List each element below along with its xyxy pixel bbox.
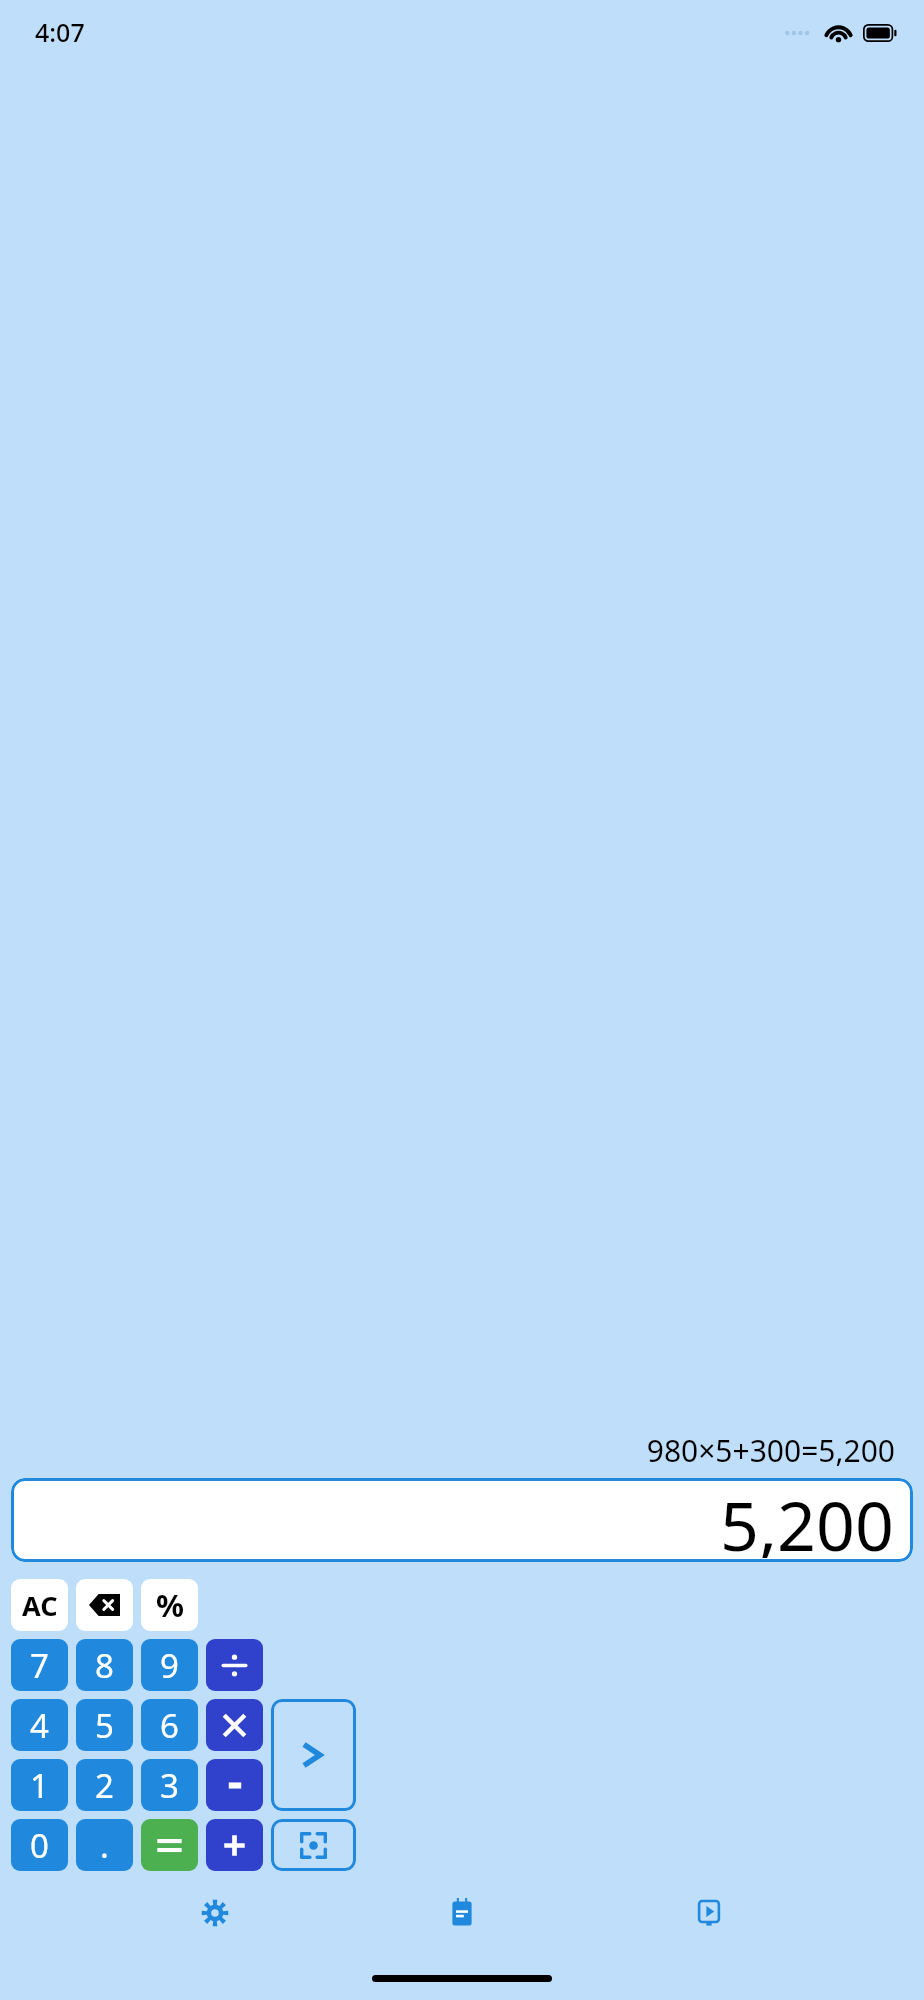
staticText: 8	[95, 1643, 114, 1688]
button[interactable]: Equals	[141, 1819, 198, 1871]
button[interactable]: Next	[271, 1699, 356, 1811]
button[interactable]: 3	[141, 1759, 198, 1811]
staticText: 4	[30, 1703, 49, 1748]
staticText: 7	[30, 1643, 49, 1688]
button[interactable]: Percent	[141, 1579, 198, 1631]
staticText: 0	[30, 1823, 49, 1868]
button[interactable]: All clear	[11, 1579, 68, 1631]
button[interactable]: 9	[141, 1639, 198, 1691]
staticText: 5,200	[720, 1478, 894, 1558]
button[interactable]: 5,200	[11, 1478, 913, 1562]
button[interactable]: Plus	[206, 1819, 263, 1871]
staticText: 3	[160, 1763, 179, 1808]
button[interactable]: 0	[11, 1819, 68, 1871]
staticText: 9	[160, 1643, 179, 1688]
button[interactable]: 6	[141, 1699, 198, 1751]
button[interactable]: 8	[76, 1639, 133, 1691]
staticText: %	[156, 1584, 184, 1626]
button[interactable]: 4	[11, 1699, 68, 1751]
staticText: 4:07	[35, 15, 85, 49]
button[interactable]: 5	[76, 1699, 133, 1751]
staticText: 1	[30, 1763, 49, 1808]
button[interactable]: Scan	[271, 1819, 356, 1871]
button[interactable]: Divide	[206, 1639, 263, 1691]
button[interactable]: Backspace	[76, 1579, 133, 1631]
button[interactable]: 7	[11, 1639, 68, 1691]
button[interactable]: Settings	[167, 1885, 263, 1941]
staticText: 5	[95, 1703, 114, 1748]
button[interactable]: Notes	[414, 1885, 510, 1941]
button[interactable]: Multiply	[206, 1699, 263, 1751]
staticText: 2	[95, 1763, 114, 1808]
staticText: AC	[22, 1587, 58, 1624]
button[interactable]: .	[76, 1819, 133, 1871]
staticText: .	[100, 1823, 109, 1868]
button[interactable]: Slideshow	[661, 1885, 757, 1941]
button[interactable]: 2	[76, 1759, 133, 1811]
button[interactable]: 1	[11, 1759, 68, 1811]
staticText: 6	[160, 1703, 179, 1748]
button[interactable]: Minus	[206, 1759, 263, 1811]
staticText: 980×5+300=5,200	[0, 1430, 895, 1471]
